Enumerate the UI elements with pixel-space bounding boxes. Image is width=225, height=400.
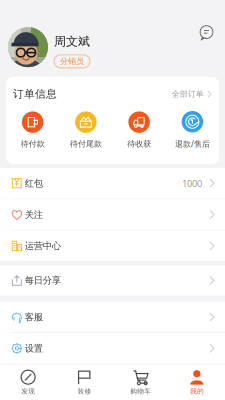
staticText: 待付款 <box>21 139 45 149</box>
staticText: 全部订单 <box>172 89 204 99</box>
button[interactable]: Messages <box>192 18 221 47</box>
staticText: 1000 <box>182 177 202 189</box>
staticText: 发现 <box>21 387 35 395</box>
button[interactable]: 全部订单 <box>172 89 212 99</box>
staticText: 退款/售后 <box>175 138 210 149</box>
button[interactable]: 待付尾款 <box>59 111 112 149</box>
button[interactable]: 购物车 <box>112 364 169 400</box>
button[interactable]: 待收获 <box>112 111 166 149</box>
staticText: 我的 <box>190 387 204 395</box>
staticText: 装修 <box>77 387 91 395</box>
button[interactable]: 设置 <box>0 333 225 364</box>
staticText: 每日分享 <box>25 275 61 286</box>
button[interactable]: 红包 <box>0 168 225 199</box>
button[interactable]: 每日分享 <box>0 265 225 296</box>
staticText: 周文斌 <box>54 34 90 49</box>
button[interactable]: 我的 <box>169 364 225 400</box>
button[interactable]: 发现 <box>0 364 56 400</box>
button[interactable]: 装修 <box>56 364 112 400</box>
button[interactable]: 退款/售后 <box>166 111 219 149</box>
staticText: 客服 <box>25 311 43 323</box>
staticText: 分销员 <box>60 56 84 66</box>
staticText: 运营中心 <box>25 240 61 252</box>
button[interactable]: 关注 <box>0 199 225 230</box>
staticText: 待收获 <box>127 139 151 149</box>
staticText: 待付尾款 <box>70 139 102 149</box>
staticText: 关注 <box>25 209 43 220</box>
staticText: 订单信息 <box>13 87 57 100</box>
button[interactable]: 分销员 <box>54 55 90 68</box>
staticText: 购物车 <box>130 387 151 395</box>
staticText: 设置 <box>25 343 43 354</box>
button[interactable]: 运营中心 <box>0 231 225 261</box>
button[interactable]: 客服 <box>0 302 225 332</box>
button[interactable]: 待付款 <box>6 111 59 149</box>
staticText: 红包 <box>25 178 43 189</box>
